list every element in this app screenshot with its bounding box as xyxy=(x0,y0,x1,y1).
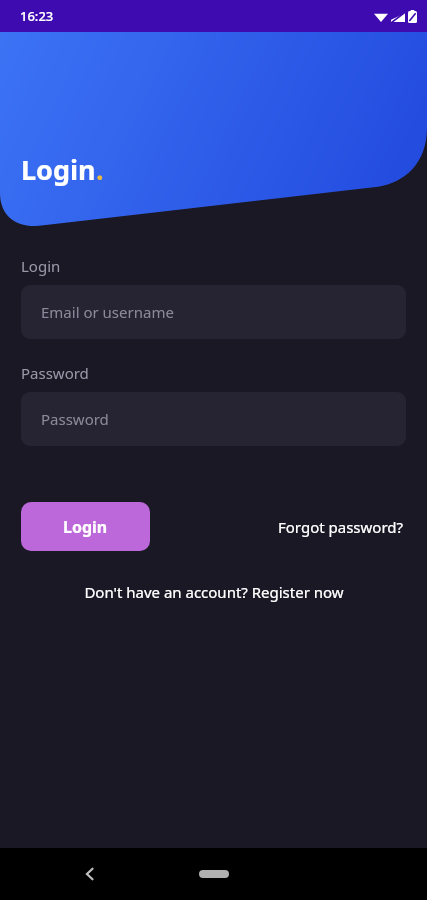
staticText: Don't have an account? Register now xyxy=(84,582,344,602)
button[interactable]: Forgot password? xyxy=(276,511,406,543)
staticText: Forgot password? xyxy=(278,517,404,537)
staticText: Login xyxy=(63,516,108,538)
staticText: Login xyxy=(21,151,96,188)
button[interactable]: Password xyxy=(21,392,406,446)
staticText: Email or username xyxy=(41,302,174,322)
button[interactable]: Don't have an account? Register now xyxy=(80,577,348,607)
staticText: Password xyxy=(41,409,109,429)
button[interactable]: Back xyxy=(72,856,108,892)
button[interactable]: Home xyxy=(184,863,244,885)
staticText: Password xyxy=(21,363,89,383)
button[interactable]: Login xyxy=(21,502,150,551)
button[interactable]: Email or username xyxy=(21,285,406,339)
staticText: Login xyxy=(21,256,61,276)
staticText: 16:23 xyxy=(20,7,54,25)
staticText: . xyxy=(96,151,104,188)
